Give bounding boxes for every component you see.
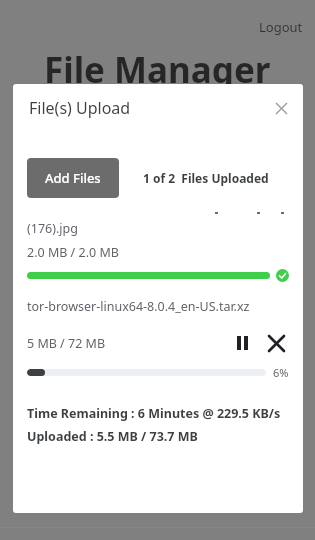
staticText: File(s) Upload	[29, 97, 131, 119]
staticText: Uploaded : 5.5 MB / 73.7 MB	[27, 428, 198, 445]
button[interactable]: Cancel upload	[263, 330, 289, 356]
staticText: 1 of 2 Files Uploaded	[143, 170, 269, 186]
button[interactable]: Add Files	[27, 158, 119, 198]
staticText: Add Files	[45, 169, 101, 187]
staticText: 5 MB / 72 MB	[27, 335, 106, 352]
button[interactable]: Logout	[259, 18, 303, 36]
staticText: Time Remaining : 6 Minutes @ 229.5 KB/s	[27, 405, 281, 422]
staticText: File Manager	[44, 46, 271, 94]
other: Completed	[276, 269, 289, 282]
button[interactable]: Pause	[229, 330, 255, 356]
button[interactable]: Close	[269, 96, 293, 120]
staticText: (176).jpg	[27, 220, 78, 237]
staticText: 6%	[273, 365, 289, 380]
staticText: 2.0 MB / 2.0 MB	[27, 244, 119, 261]
staticText: tor-browser-linux64-8.0.4_en-US.tar.xz	[27, 298, 250, 315]
